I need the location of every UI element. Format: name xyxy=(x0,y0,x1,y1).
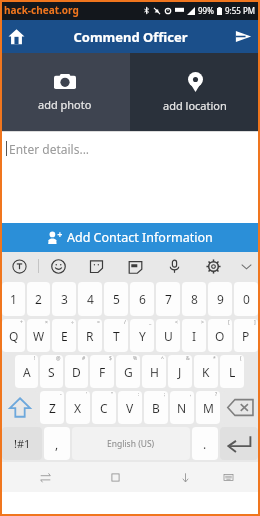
button[interactable]: Hide keyboard xyxy=(169,462,201,492)
staticText: D xyxy=(72,364,81,380)
staticText: O xyxy=(215,328,225,344)
staticText: > xyxy=(201,319,204,326)
button[interactable]: × xyxy=(27,319,50,352)
staticText: ; xyxy=(164,391,166,398)
staticText: 9 xyxy=(217,291,224,307)
button[interactable]: Translate xyxy=(0,252,38,280)
button[interactable]: ( xyxy=(220,355,244,388)
staticText: G xyxy=(124,364,133,380)
button[interactable]: 5 xyxy=(104,282,128,316)
staticText: % xyxy=(133,355,138,362)
staticText: 8 xyxy=(191,291,198,307)
button[interactable]: Emoji xyxy=(39,252,77,280)
button[interactable]: add photo xyxy=(0,53,130,131)
button[interactable]: " xyxy=(92,391,116,424)
staticText: 4 xyxy=(87,291,94,307)
button[interactable]: ^ xyxy=(142,355,166,388)
button[interactable]: !#1 xyxy=(2,427,42,460)
staticText: U xyxy=(164,328,173,344)
button[interactable]: add location xyxy=(130,53,260,131)
button[interactable]: Recents xyxy=(29,462,61,492)
button[interactable]: 6 xyxy=(130,282,154,316)
staticText: * xyxy=(213,355,216,362)
button[interactable]: _ xyxy=(130,319,154,352)
staticText: B xyxy=(152,400,160,416)
button[interactable]: Stickers xyxy=(77,252,116,280)
staticText: $ xyxy=(109,355,112,362)
button[interactable]: . xyxy=(192,427,218,460)
button[interactable]: 4 xyxy=(78,282,102,316)
staticText: I xyxy=(192,328,197,344)
button[interactable]: Settings xyxy=(194,252,233,280)
button[interactable]: ] xyxy=(234,319,258,352)
button[interactable]: Backspace xyxy=(222,391,258,424)
button[interactable]: : xyxy=(118,391,142,424)
button[interactable]: Send xyxy=(227,20,260,53)
button[interactable]: 9 xyxy=(208,282,232,316)
button[interactable]: ? xyxy=(196,391,220,424)
button[interactable]: > xyxy=(182,319,206,352)
button[interactable]: Home xyxy=(99,462,131,492)
staticText: 99% xyxy=(198,5,214,16)
staticText: M xyxy=(203,400,214,416)
button[interactable]: @ xyxy=(40,355,63,388)
staticText: English (US) xyxy=(107,438,155,450)
button[interactable]: Enter xyxy=(220,427,258,460)
staticText: V xyxy=(126,400,134,416)
button[interactable]: - xyxy=(40,391,64,424)
button[interactable]: Switch keyboard xyxy=(212,462,244,492)
staticText: _ xyxy=(149,319,152,326)
staticText: Enter details... xyxy=(9,141,90,157)
button[interactable]: GIF xyxy=(116,252,155,280)
button[interactable]: English (US) xyxy=(72,427,190,460)
button[interactable]: ' xyxy=(66,391,90,424)
button[interactable]: 2 xyxy=(27,282,50,316)
button[interactable]: Shift xyxy=(2,391,38,424)
button[interactable]: / xyxy=(104,319,128,352)
button[interactable]: 0 xyxy=(234,282,258,316)
button[interactable]: 1 xyxy=(2,282,25,316)
staticText: . xyxy=(203,436,207,452)
button[interactable]: [ xyxy=(208,319,232,352)
staticText: × xyxy=(45,319,48,326)
staticText: N xyxy=(177,400,187,416)
staticText: = xyxy=(97,319,100,326)
button[interactable]: Collapse xyxy=(233,252,260,280)
button[interactable]: Add Contact Information xyxy=(0,223,260,252)
staticText: Q xyxy=(9,328,19,344)
button[interactable]: , xyxy=(170,391,194,424)
button[interactable]: 3 xyxy=(52,282,76,316)
button[interactable]: $ xyxy=(90,355,114,388)
button[interactable]: Enter details... xyxy=(0,131,260,223)
button[interactable]: Home xyxy=(0,20,33,53)
staticText: , xyxy=(190,391,192,398)
staticText: # xyxy=(82,355,86,362)
button[interactable]: Voice input xyxy=(155,252,194,280)
button[interactable]: * xyxy=(194,355,218,388)
staticText: / xyxy=(124,319,126,326)
button[interactable]: + xyxy=(2,319,25,352)
button[interactable]: 8 xyxy=(182,282,206,316)
staticText: 0 xyxy=(243,291,250,307)
staticText: 5 xyxy=(113,291,120,307)
button[interactable]: 7 xyxy=(156,282,180,316)
button[interactable]: ! xyxy=(15,355,38,388)
button[interactable]: ; xyxy=(144,391,168,424)
button[interactable]: = xyxy=(78,319,102,352)
staticText: & xyxy=(186,355,190,362)
button[interactable]: ÷ xyxy=(52,319,76,352)
button[interactable]: , xyxy=(44,427,70,460)
button[interactable]: < xyxy=(156,319,180,352)
staticText: R xyxy=(86,328,94,344)
button[interactable]: # xyxy=(65,355,88,388)
staticText: ? xyxy=(215,391,218,398)
staticText: Y xyxy=(139,328,146,344)
button[interactable]: & xyxy=(168,355,192,388)
staticText: 1 xyxy=(10,291,17,307)
staticText: S xyxy=(48,364,55,380)
staticText: X xyxy=(74,400,82,416)
button[interactable]: % xyxy=(116,355,140,388)
staticText: T xyxy=(113,328,120,344)
staticText: !#1 xyxy=(14,436,31,451)
staticText: ! xyxy=(34,355,36,362)
